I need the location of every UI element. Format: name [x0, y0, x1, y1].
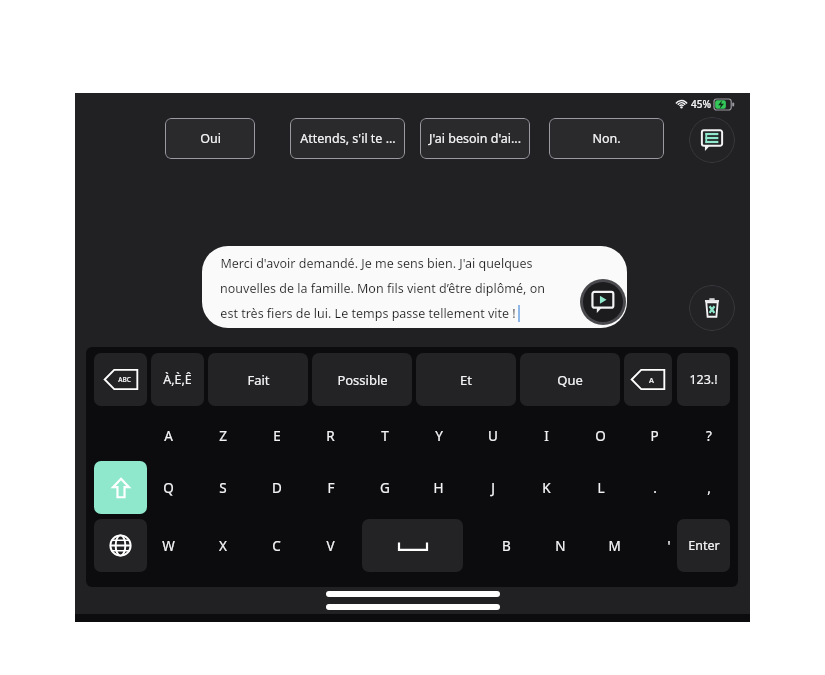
staticText: Enter [688, 537, 720, 554]
button[interactable]: X [196, 519, 249, 572]
staticText: Possible [337, 371, 388, 389]
button[interactable]: P [628, 409, 681, 462]
staticText: Et [460, 371, 472, 389]
staticText: est très fiers de lui. Le temps passe te… [220, 305, 516, 322]
staticText: L [597, 479, 605, 497]
button[interactable]: Y [412, 409, 465, 462]
staticText: ABC [118, 375, 131, 384]
staticText: B [502, 537, 511, 555]
staticText: 45% [691, 97, 711, 111]
staticText: T [381, 427, 389, 445]
staticText: Z [219, 427, 227, 445]
staticText: ? [706, 427, 712, 445]
button[interactable]: Messages [689, 117, 735, 163]
staticText: Q [163, 479, 174, 497]
button[interactable]: Et [416, 353, 516, 406]
staticText: F [327, 479, 335, 497]
staticText: Fait [247, 371, 270, 389]
button[interactable]: ' [642, 519, 695, 572]
button[interactable]: Fait [208, 353, 308, 406]
button[interactable]: Backspace [624, 353, 672, 406]
staticText: J [491, 479, 495, 497]
button[interactable]: T [358, 409, 411, 462]
staticText: ' [667, 537, 671, 555]
staticText: Oui [200, 130, 221, 147]
button[interactable]: D [250, 461, 303, 514]
staticText: I [544, 427, 549, 445]
button[interactable]: Delete [689, 285, 735, 331]
button[interactable]: O [574, 409, 627, 462]
button[interactable]: Merci d'avoir demandé. Je me sens bien. … [202, 246, 627, 328]
button[interactable]: , [682, 461, 735, 514]
staticText: W [162, 537, 175, 555]
staticText: Que [557, 371, 583, 389]
staticText: M [608, 537, 621, 555]
staticText: C [272, 537, 281, 555]
button[interactable]: Que [520, 353, 620, 406]
button[interactable]: F [304, 461, 357, 514]
button[interactable]: À,È,Ê [151, 353, 204, 406]
staticText: . [653, 479, 657, 497]
button[interactable]: Attends, s'il te ... [290, 118, 405, 159]
button[interactable]: Oui [165, 118, 255, 159]
button[interactable]: Shift [94, 461, 147, 514]
button[interactable]: S [196, 461, 249, 514]
staticText: X [219, 537, 227, 555]
staticText: Y [435, 427, 443, 445]
button[interactable]: I [520, 409, 573, 462]
button[interactable]: Delete word [94, 353, 147, 406]
staticText: D [272, 479, 282, 497]
staticText: S [219, 479, 227, 497]
staticText: À,È,Ê [163, 371, 192, 388]
button[interactable]: Enter [677, 519, 730, 572]
button[interactable]: Possible [312, 353, 412, 406]
button[interactable]: Q [142, 461, 195, 514]
button[interactable]: Z [196, 409, 249, 462]
button[interactable]: Non. [549, 118, 664, 159]
staticText: J'ai besoin d'ai... [429, 130, 521, 147]
staticText: P [650, 427, 659, 445]
staticText: V [326, 537, 335, 555]
button[interactable]: L [574, 461, 627, 514]
staticText: A [649, 375, 654, 385]
button[interactable]: 123.! [677, 353, 730, 406]
button[interactable]: N [534, 519, 587, 572]
button[interactable]: J [466, 461, 519, 514]
staticText: N [555, 537, 566, 555]
button[interactable]: U [466, 409, 519, 462]
button[interactable]: Space [362, 519, 463, 572]
button[interactable]: E [250, 409, 303, 462]
staticText: E [273, 427, 281, 445]
staticText: U [488, 427, 498, 445]
staticText: Attends, s'il te ... [300, 130, 396, 147]
staticText: nouvelles de la famille. Mon fils vient … [220, 280, 545, 297]
staticText: G [380, 479, 390, 497]
staticText: , [707, 479, 711, 497]
button[interactable]: ? [682, 409, 735, 462]
button[interactable]: V [304, 519, 357, 572]
button[interactable]: G [358, 461, 411, 514]
button[interactable]: K [520, 461, 573, 514]
staticText: Non. [592, 130, 621, 147]
button[interactable]: W [142, 519, 195, 572]
button[interactable]: H [412, 461, 465, 514]
staticText: H [433, 479, 444, 497]
staticText: 123.! [689, 371, 718, 388]
button[interactable]: B [480, 519, 533, 572]
staticText: A [164, 427, 173, 445]
staticText: Merci d'avoir demandé. Je me sens bien. … [220, 255, 533, 272]
staticText: K [542, 479, 551, 497]
staticText: R [326, 427, 335, 445]
button[interactable]: C [250, 519, 303, 572]
staticText: O [595, 427, 606, 445]
button[interactable]: Play message [583, 282, 623, 322]
button[interactable]: . [628, 461, 681, 514]
button[interactable]: A [142, 409, 195, 462]
button[interactable]: Change language [94, 519, 147, 572]
button[interactable]: R [304, 409, 357, 462]
button[interactable]: M [588, 519, 641, 572]
button[interactable]: J'ai besoin d'ai... [420, 118, 530, 159]
